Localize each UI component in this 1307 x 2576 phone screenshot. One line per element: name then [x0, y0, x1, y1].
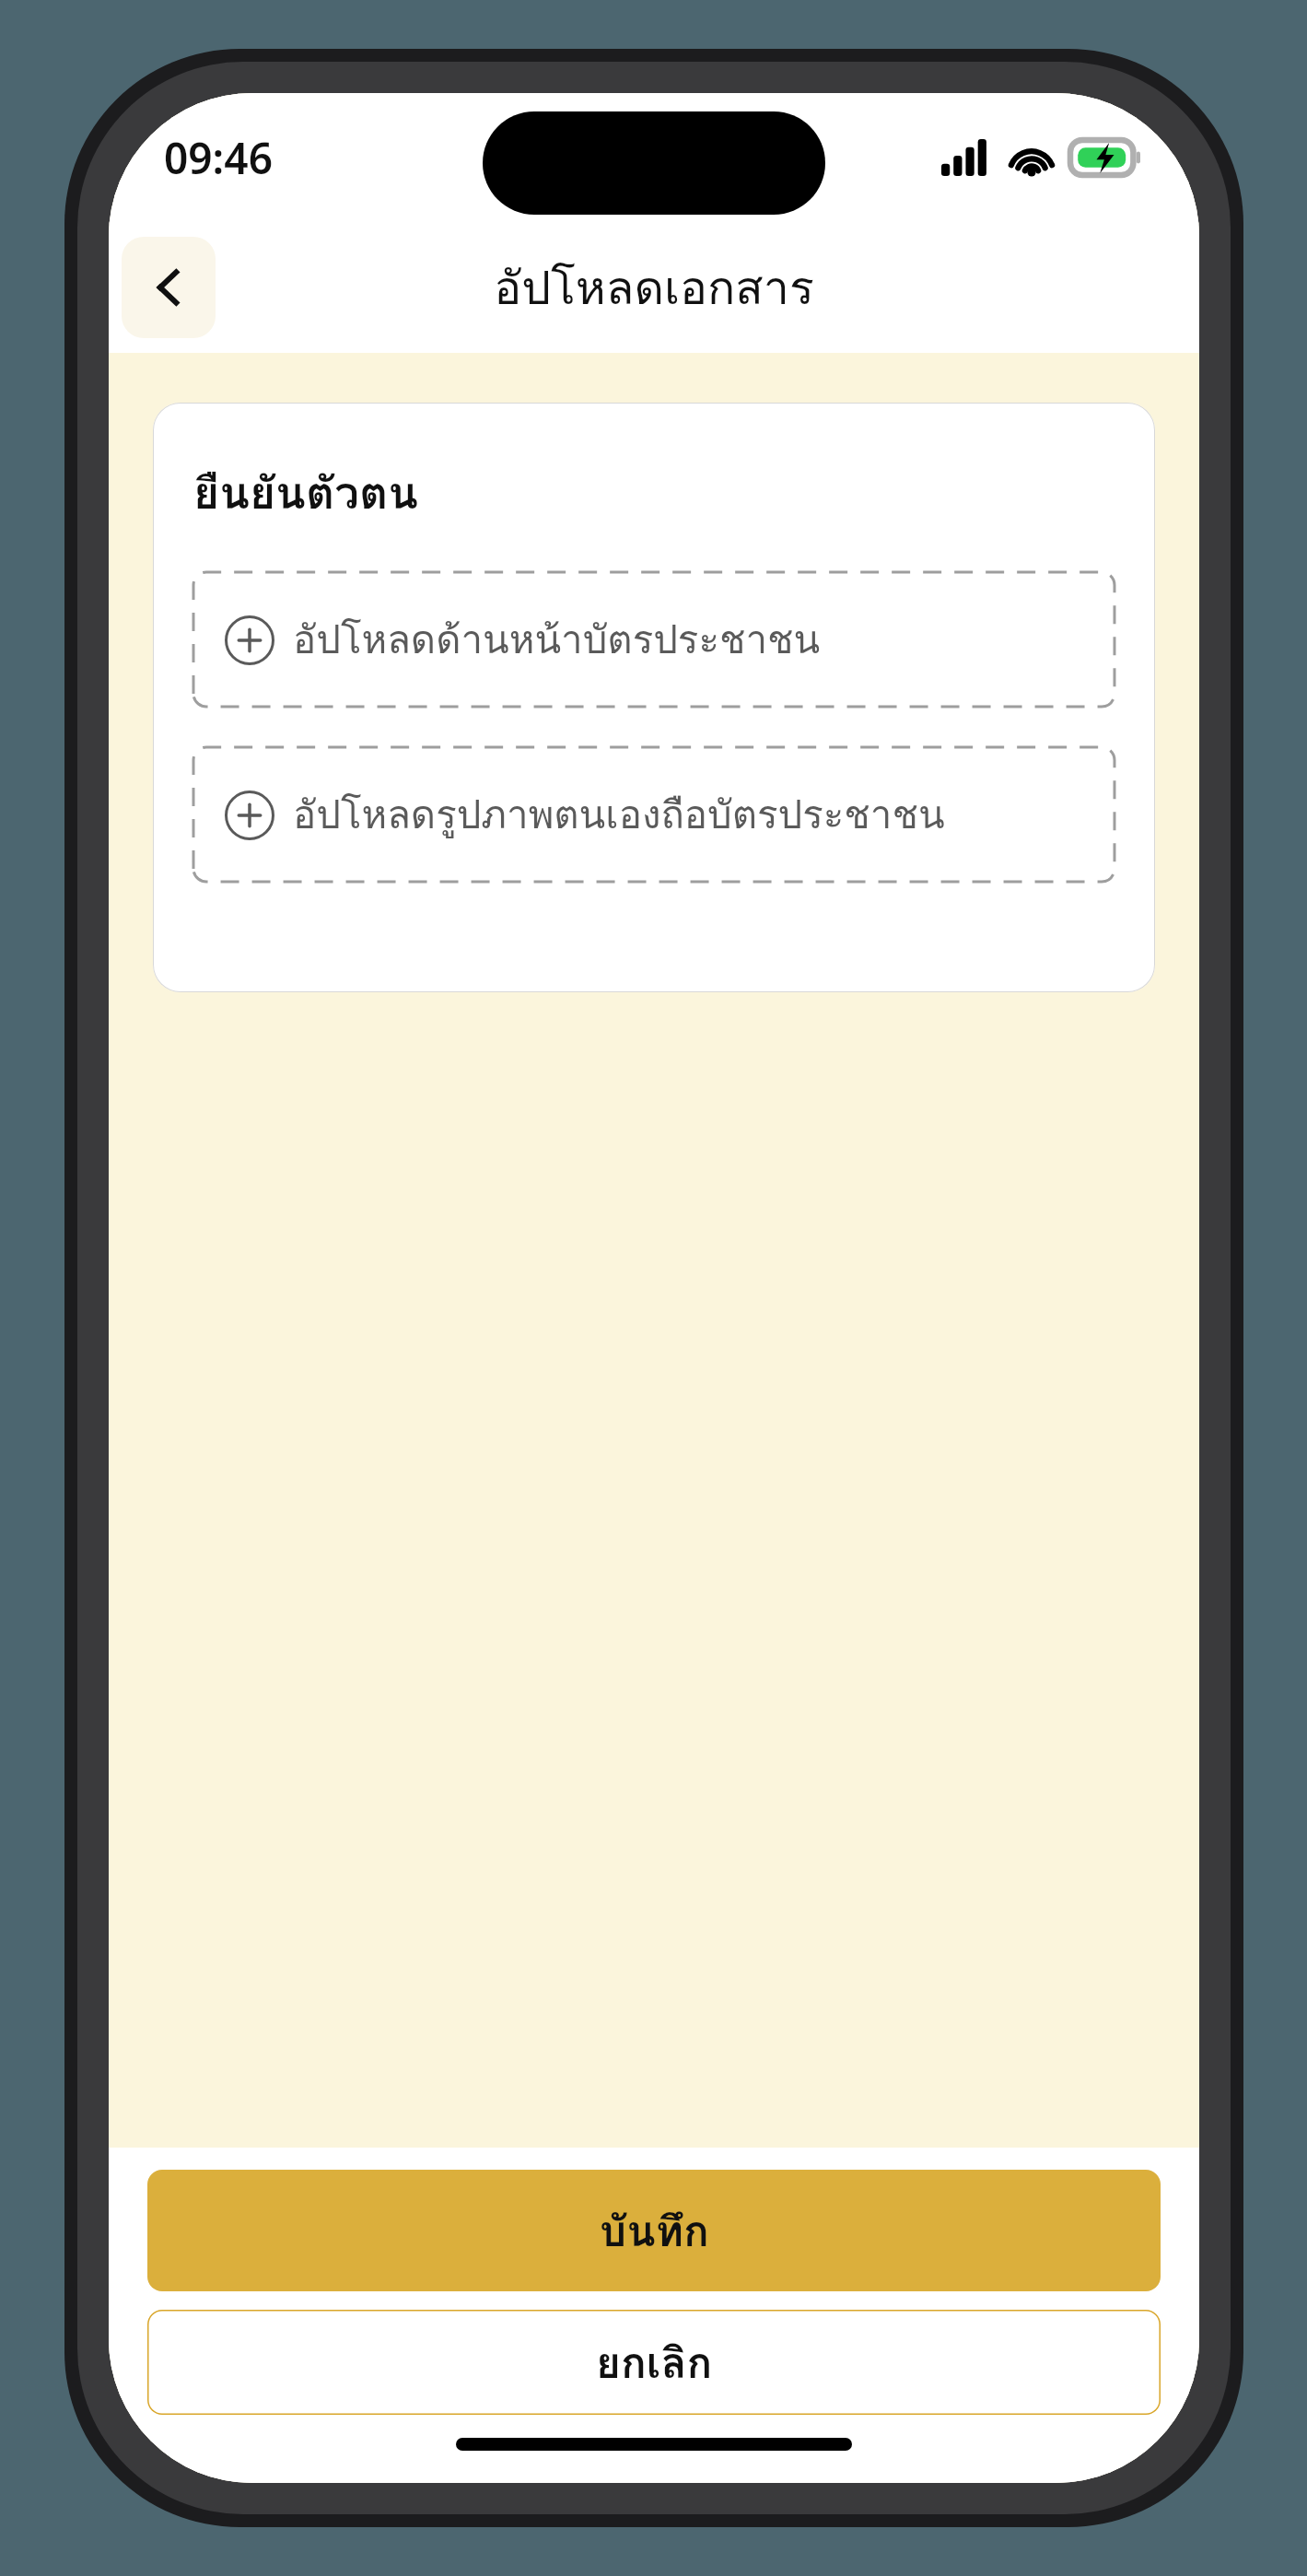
button[interactable]: ยกเลิก [147, 2310, 1161, 2415]
button[interactable]: บันทึก [147, 2170, 1161, 2291]
staticText: อัปโหลดรูปภาพตนเองถือบัตรประชาชน [293, 784, 945, 846]
button[interactable]: Back [122, 237, 216, 338]
button[interactable]: อัปโหลดรูปภาพตนเองถือบัตรประชาชน [193, 747, 1114, 882]
staticText: บันทึก [600, 2197, 709, 2265]
staticText: ยกเลิก [596, 2329, 713, 2396]
staticText: 09:46 [164, 129, 273, 187]
staticText: อัปโหลดเอกสาร [494, 252, 814, 324]
button[interactable]: อัปโหลดด้านหน้าบัตรประชาชน [193, 572, 1114, 707]
staticText: ยืนยันตัวตน [193, 458, 418, 528]
staticText: อัปโหลดด้านหน้าบัตรประชาชน [293, 609, 821, 671]
